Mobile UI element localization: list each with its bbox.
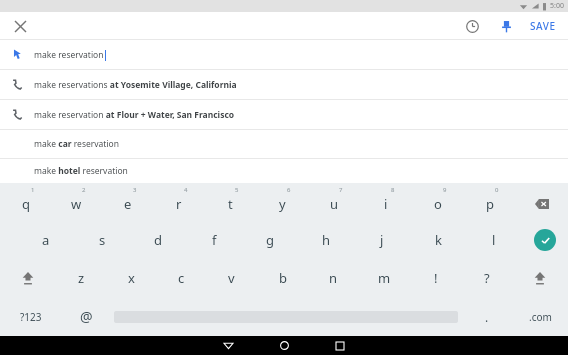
button[interactable]: . (462, 297, 512, 336)
button[interactable]: Shift (0, 259, 56, 297)
staticText: d (154, 231, 162, 249)
staticText: l (492, 231, 496, 249)
button[interactable]: k (410, 221, 466, 259)
button[interactable]: make car reservation (0, 130, 568, 158)
staticText: y (279, 195, 286, 213)
button[interactable]: 4 (153, 183, 204, 221)
staticText: 0 (495, 186, 499, 194)
button[interactable]: x (106, 259, 156, 297)
button[interactable]: g (242, 221, 298, 259)
staticText: j (380, 231, 384, 249)
button[interactable]: z (56, 259, 106, 297)
button[interactable]: 8 (360, 183, 412, 221)
staticText: 1 (31, 186, 35, 194)
button[interactable]: m (359, 259, 410, 297)
staticText: q (22, 195, 30, 213)
button[interactable]: Enter (522, 221, 568, 259)
button[interactable]: ?123 (0, 297, 62, 336)
staticText: f (212, 231, 217, 249)
button[interactable]: 0 (464, 183, 516, 221)
staticText: 6 (287, 186, 291, 194)
button[interactable]: 3 (102, 183, 153, 221)
staticText: make reservation at Flour + Water, San F… (34, 109, 235, 121)
staticText: 4 (184, 186, 188, 194)
staticText: r (176, 195, 182, 213)
button[interactable]: Shift (512, 259, 568, 297)
button[interactable]: a (18, 221, 74, 259)
staticText: . (485, 309, 489, 325)
staticText: a (42, 231, 50, 249)
button[interactable]: make reservation at Flour + Water, San F… (0, 100, 568, 129)
staticText: o (434, 195, 442, 213)
button[interactable]: n (308, 259, 359, 297)
staticText: ! (434, 269, 438, 287)
button[interactable]: 6 (256, 183, 308, 221)
button[interactable]: l (466, 221, 522, 259)
button[interactable]: 1 (0, 183, 51, 221)
staticText: 7 (339, 186, 343, 194)
button[interactable]: make hotel reservation (0, 159, 568, 183)
staticText: 8 (391, 186, 395, 194)
staticText: 3 (133, 186, 137, 194)
staticText: t (228, 195, 233, 213)
staticText: m (378, 269, 391, 287)
button[interactable]: j (354, 221, 410, 259)
button[interactable]: b (257, 259, 308, 297)
button[interactable]: s (74, 221, 130, 259)
staticText: b (279, 269, 287, 287)
button[interactable]: f (186, 221, 242, 259)
staticText: @ (80, 307, 93, 326)
staticText: 9 (443, 186, 447, 194)
staticText: 5:00 (550, 1, 564, 11)
button[interactable]: 9 (412, 183, 464, 221)
button[interactable]: .com (512, 297, 568, 336)
button[interactable]: Back (210, 336, 246, 355)
button[interactable]: ! (410, 259, 461, 297)
button[interactable]: make reservations at Yosemite Village, C… (0, 70, 568, 99)
staticText: c (178, 269, 185, 287)
staticText: make hotel reservation (34, 165, 128, 177)
staticText: make car reservation (34, 138, 120, 150)
button[interactable]: ? (461, 259, 512, 297)
staticText: make reservation (34, 49, 104, 61)
staticText: 5 (235, 186, 239, 194)
staticText: .com (529, 310, 552, 324)
staticText: make reservations at Yosemite Village, C… (34, 79, 237, 91)
staticText: ?123 (20, 310, 42, 324)
staticText: s (99, 231, 106, 249)
staticText: i (384, 195, 388, 213)
button[interactable]: c (156, 259, 206, 297)
staticText: g (266, 231, 274, 249)
button[interactable]: @ (62, 297, 110, 336)
staticText: v (228, 269, 235, 287)
button[interactable]: Close (8, 14, 32, 38)
button[interactable]: Recents (322, 336, 358, 355)
staticText: e (124, 195, 132, 213)
button[interactable]: h (298, 221, 354, 259)
staticText: u (330, 195, 339, 213)
staticText: k (435, 231, 442, 249)
staticText: n (329, 269, 338, 287)
button[interactable]: Pin (494, 14, 518, 38)
button[interactable]: Backspace (516, 183, 568, 221)
staticText: h (322, 231, 331, 249)
button[interactable]: d (130, 221, 186, 259)
staticText: p (486, 195, 494, 213)
button[interactable]: make reservation (0, 40, 568, 69)
button[interactable]: 5 (204, 183, 256, 221)
button[interactable]: Recent (460, 14, 484, 38)
staticText: w (71, 195, 82, 213)
button[interactable]: Space (110, 297, 462, 336)
staticText: SAVE (530, 19, 556, 33)
button[interactable]: 2 (51, 183, 102, 221)
button[interactable]: Home (266, 336, 302, 355)
staticText: ? (484, 269, 490, 287)
button[interactable]: v (206, 259, 257, 297)
staticText: z (78, 269, 85, 287)
staticText: x (128, 269, 135, 287)
staticText: 2 (82, 186, 86, 194)
button[interactable]: 7 (308, 183, 360, 221)
button[interactable]: SAVE (528, 19, 558, 33)
